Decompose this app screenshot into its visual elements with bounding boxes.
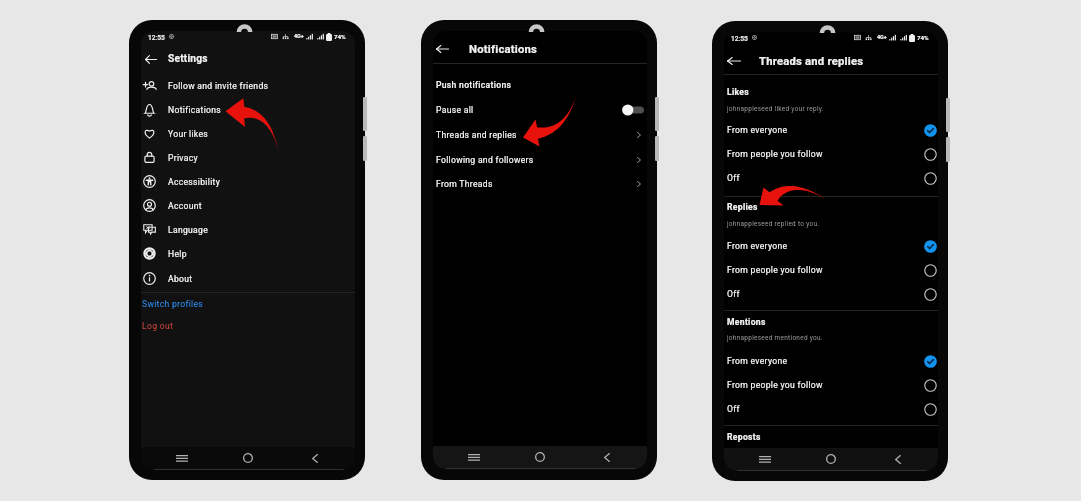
staticText: From everyone xyxy=(727,356,788,366)
staticText: Off xyxy=(727,289,740,299)
staticText: Push notifications xyxy=(436,80,512,90)
button[interactable]: Back xyxy=(597,447,617,467)
button[interactable]: Back xyxy=(888,449,908,469)
staticText: From people you follow xyxy=(727,265,823,275)
staticText: Replies xyxy=(727,202,758,212)
button[interactable]: Back xyxy=(141,48,161,70)
button[interactable]: Notifications xyxy=(141,97,355,121)
button[interactable]: From people you follow xyxy=(724,142,938,166)
staticText: 4G+ xyxy=(877,34,887,40)
button[interactable]: Recent apps xyxy=(464,447,484,467)
staticText: Threads and replies xyxy=(759,55,864,68)
button[interactable]: From people you follow xyxy=(724,373,938,397)
staticText: Log out xyxy=(142,321,174,331)
staticText: 74% xyxy=(917,34,929,41)
button[interactable]: Accessibility xyxy=(141,169,355,193)
button[interactable]: Account xyxy=(141,193,355,217)
button[interactable]: Follow and invite friends xyxy=(141,73,355,97)
button[interactable]: Back xyxy=(305,448,325,468)
staticText: About xyxy=(168,274,193,284)
staticText: 74% xyxy=(334,33,346,40)
staticText: johnappleseed mentioned you. xyxy=(727,334,823,342)
staticText: From Threads xyxy=(436,179,493,189)
button[interactable]: About xyxy=(141,266,355,290)
staticText: Notifications xyxy=(168,105,222,115)
staticText: Reposts xyxy=(727,432,761,442)
button[interactable]: From everyone xyxy=(724,349,938,373)
staticText: From everyone xyxy=(727,241,788,251)
button[interactable]: Recent apps xyxy=(172,448,192,468)
staticText: Pause all xyxy=(436,105,474,115)
button[interactable]: From everyone xyxy=(724,118,938,142)
button[interactable]: Recent apps xyxy=(755,449,775,469)
button[interactable]: Privacy xyxy=(141,145,355,169)
button[interactable]: Pause all xyxy=(433,98,647,122)
staticText: Switch profiles xyxy=(142,299,204,309)
staticText: Privacy xyxy=(168,153,198,163)
staticText: Follow and invite friends xyxy=(168,81,269,91)
staticText: Your likes xyxy=(168,129,209,139)
staticText: From everyone xyxy=(727,125,788,135)
staticText: Mentions xyxy=(727,317,766,327)
button[interactable]: Off xyxy=(724,397,938,421)
staticText: 4G+ xyxy=(294,33,304,39)
button[interactable]: Language xyxy=(141,217,355,241)
button[interactable]: Following and followers xyxy=(433,148,647,172)
button[interactable]: Back xyxy=(433,38,453,60)
staticText: Threads and replies xyxy=(436,130,517,140)
button[interactable]: Log out xyxy=(141,315,355,337)
staticText: Off xyxy=(727,404,740,414)
staticText: Off xyxy=(727,173,740,183)
button[interactable]: Off xyxy=(724,282,938,306)
button[interactable]: Home xyxy=(238,448,258,468)
staticText: Notifications xyxy=(469,43,538,56)
button[interactable]: Your likes xyxy=(141,121,355,145)
staticText: From people you follow xyxy=(727,149,823,159)
button[interactable]: Off xyxy=(724,166,938,190)
button[interactable]: From people you follow xyxy=(724,258,938,282)
button[interactable]: Home xyxy=(821,449,841,469)
staticText: Help xyxy=(168,249,187,259)
staticText: johnappleseed liked your reply. xyxy=(727,105,824,113)
button[interactable]: Help xyxy=(141,241,355,265)
staticText: Following and followers xyxy=(436,155,534,165)
staticText: Language xyxy=(168,225,209,235)
button[interactable]: Threads and replies xyxy=(433,123,647,147)
staticText: 12:55 xyxy=(148,34,165,42)
button[interactable]: Home xyxy=(530,447,550,467)
button[interactable]: From Threads xyxy=(433,172,647,196)
button[interactable]: Switch profiles xyxy=(141,293,355,315)
button[interactable]: Back xyxy=(724,50,745,72)
staticText: Likes xyxy=(727,87,749,97)
staticText: Accessibility xyxy=(168,177,220,187)
staticText: Account xyxy=(168,201,202,211)
button[interactable]: From everyone xyxy=(724,234,938,258)
staticText: 12:55 xyxy=(731,35,748,43)
staticText: Settings xyxy=(168,53,208,65)
staticText: johnappleseed replied to you. xyxy=(727,220,820,228)
staticText: From people you follow xyxy=(727,380,823,390)
